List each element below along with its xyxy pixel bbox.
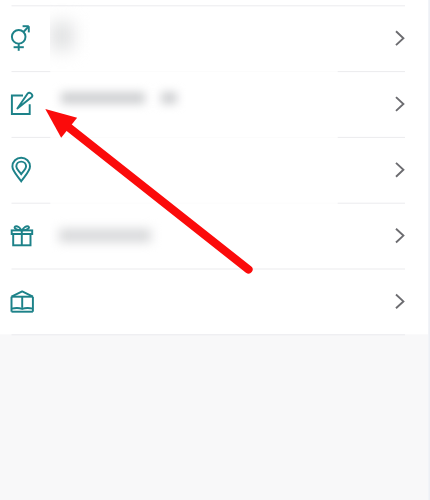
button[interactable]: Library: [0, 269, 430, 335]
button[interactable]: Edit profile: [0, 71, 430, 137]
button[interactable]: Location: [0, 137, 430, 203]
button[interactable]: Gender: [0, 5, 430, 71]
button[interactable]: Gifts: [0, 203, 430, 269]
